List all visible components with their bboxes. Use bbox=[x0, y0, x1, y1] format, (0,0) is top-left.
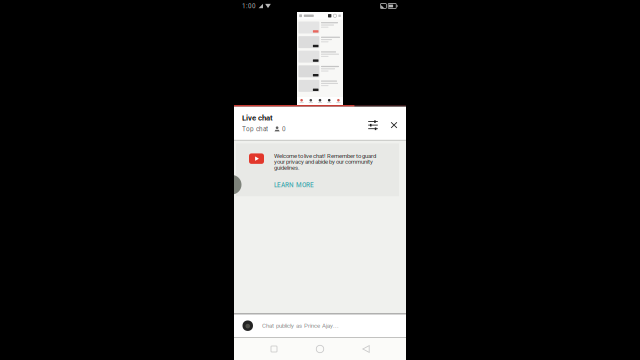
staticText: Welcome to live chat! Remember to guard … bbox=[274, 152, 376, 171]
button[interactable]: LEARN MORE bbox=[274, 171, 314, 190]
button[interactable]: Recent apps bbox=[261, 338, 287, 360]
button[interactable]: Back bbox=[353, 338, 379, 360]
staticText: LEARN MORE bbox=[274, 181, 314, 189]
button[interactable]: Live chat settings bbox=[362, 114, 383, 136]
button[interactable]: Close live chat bbox=[383, 114, 404, 136]
staticText: Top chat bbox=[242, 125, 268, 133]
staticText: Live chat bbox=[242, 113, 273, 122]
staticText: 0 bbox=[282, 125, 286, 133]
staticText: 1:00 bbox=[242, 2, 256, 10]
button[interactable]: Chat publicly as Prince Ajay... bbox=[234, 314, 406, 337]
button[interactable]: Home bbox=[307, 338, 333, 360]
staticText: Chat publicly as Prince Ajay... bbox=[262, 322, 339, 329]
